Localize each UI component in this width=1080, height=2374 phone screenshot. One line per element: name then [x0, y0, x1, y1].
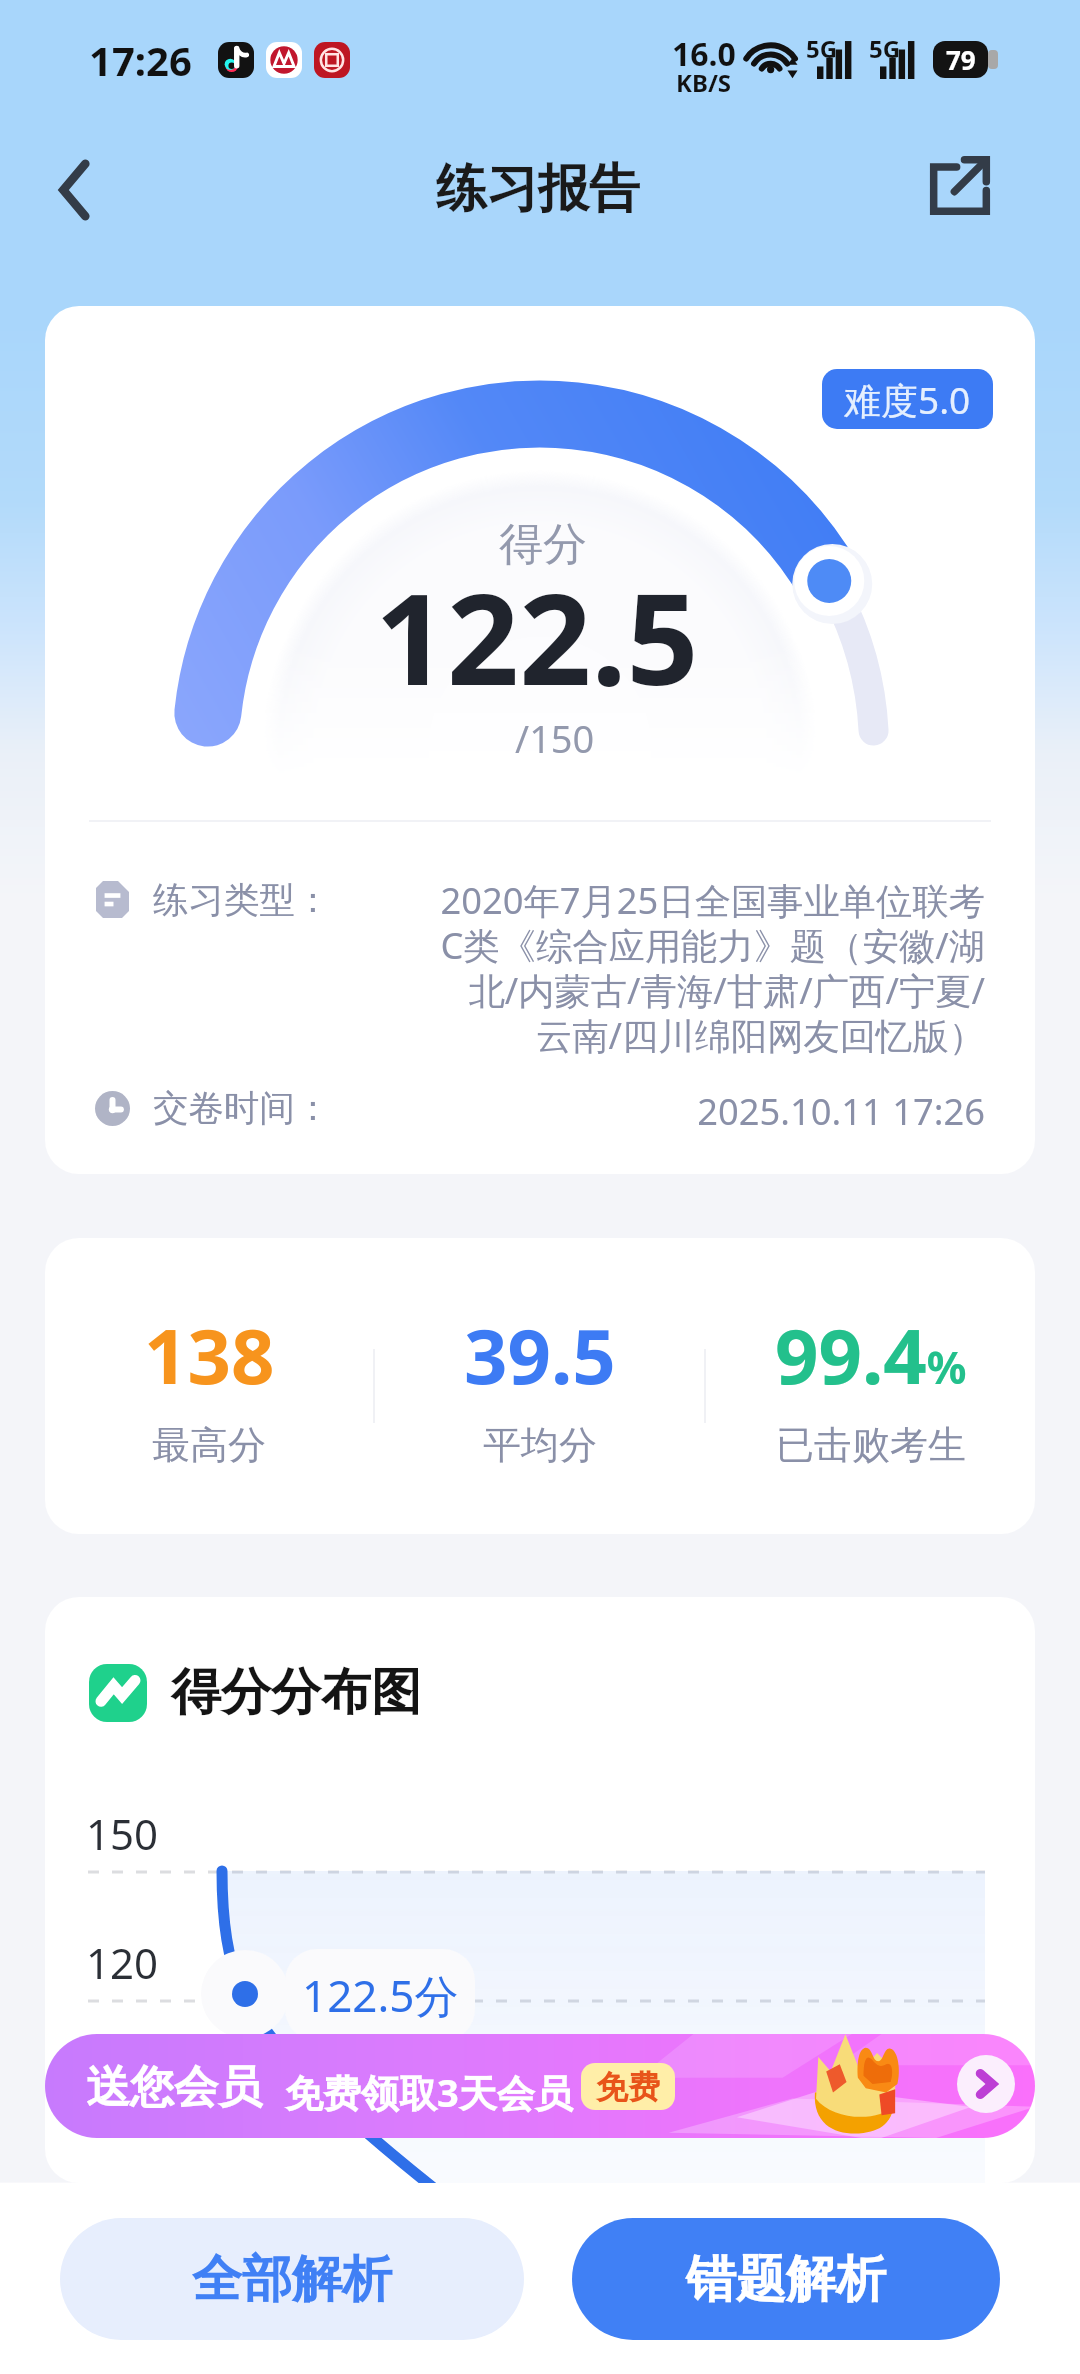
staticText: 39.5 — [464, 1303, 616, 1407]
staticText: 2020年7月25日全国事业单位联考C类《综合应用能力》题（安徽/湖北/内蒙古/… — [437, 875, 985, 1060]
staticText: 全部解析 — [192, 2248, 392, 2311]
staticText: 5G — [869, 32, 901, 65]
staticText: 122.5 — [375, 550, 699, 722]
button[interactable]: 送您会员 — [45, 2034, 1035, 2138]
staticText: 送您会员 — [86, 2060, 262, 2115]
staticText: 138 — [144, 1303, 275, 1407]
staticText: 得分分布图 — [171, 1661, 421, 1724]
staticText: 免费领取3天会员 — [285, 2066, 573, 2118]
staticText: /150 — [515, 712, 595, 764]
staticText: 17:26 — [89, 33, 192, 87]
staticText: 16.0 — [672, 32, 736, 76]
staticText: 已击败考生 — [776, 1421, 966, 1469]
staticText: 150 — [86, 1805, 159, 1862]
staticText: 免费 — [596, 2067, 660, 2107]
button[interactable]: Share — [920, 145, 1000, 225]
staticText: 难度5.0 — [844, 374, 971, 425]
staticText: 练习类型： — [153, 878, 331, 923]
staticText: 99.4% — [775, 1303, 967, 1407]
staticText: 79 — [946, 42, 976, 77]
button[interactable]: Back — [26, 144, 118, 236]
staticText: 错题解析 — [686, 2248, 886, 2311]
staticText: 练习报告 — [436, 157, 640, 221]
staticText: 平均分 — [483, 1421, 597, 1469]
staticText: 交卷时间： — [153, 1086, 331, 1131]
button[interactable]: 错题解析 — [572, 2218, 1000, 2340]
button[interactable]: 全部解析 — [60, 2218, 524, 2340]
staticText: 得分 — [499, 517, 587, 572]
staticText: 120 — [86, 1934, 159, 1991]
staticText: 2025.10.11 17:26 — [437, 1086, 985, 1135]
button[interactable]: 难度5.0 — [822, 369, 993, 429]
staticText: 122.5分 — [302, 1965, 459, 2025]
staticText: 5G — [806, 32, 838, 65]
staticText: KB/S — [676, 66, 732, 99]
staticText: 最高分 — [152, 1421, 266, 1469]
